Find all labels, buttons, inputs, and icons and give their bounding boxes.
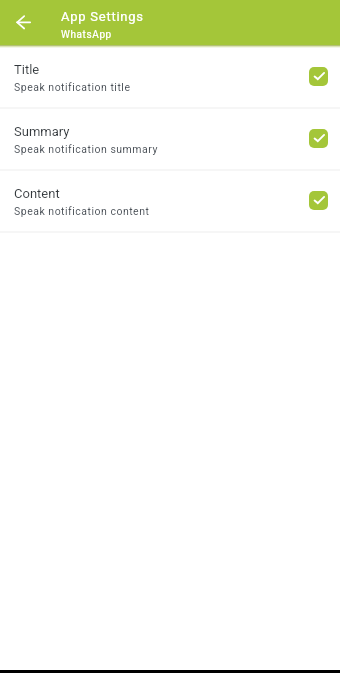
- staticText: WhatsApp: [61, 29, 112, 41]
- button[interactable]: Title: [0, 45, 340, 106]
- button[interactable]: Toggle Summary: [309, 129, 328, 148]
- button[interactable]: Toggle Content: [309, 191, 328, 210]
- staticText: Content: [14, 186, 60, 201]
- button[interactable]: Summary: [0, 107, 340, 168]
- staticText: Speak notification summary: [14, 143, 158, 155]
- button[interactable]: Content: [0, 169, 340, 230]
- staticText: Speak notification title: [14, 81, 131, 93]
- staticText: Summary: [14, 124, 70, 139]
- button[interactable]: Navigate up: [0, 1, 44, 44]
- button[interactable]: Toggle Title: [309, 67, 328, 86]
- staticText: Speak notification content: [14, 205, 150, 217]
- staticText: App Settings: [61, 9, 144, 24]
- staticText: Title: [14, 62, 40, 77]
